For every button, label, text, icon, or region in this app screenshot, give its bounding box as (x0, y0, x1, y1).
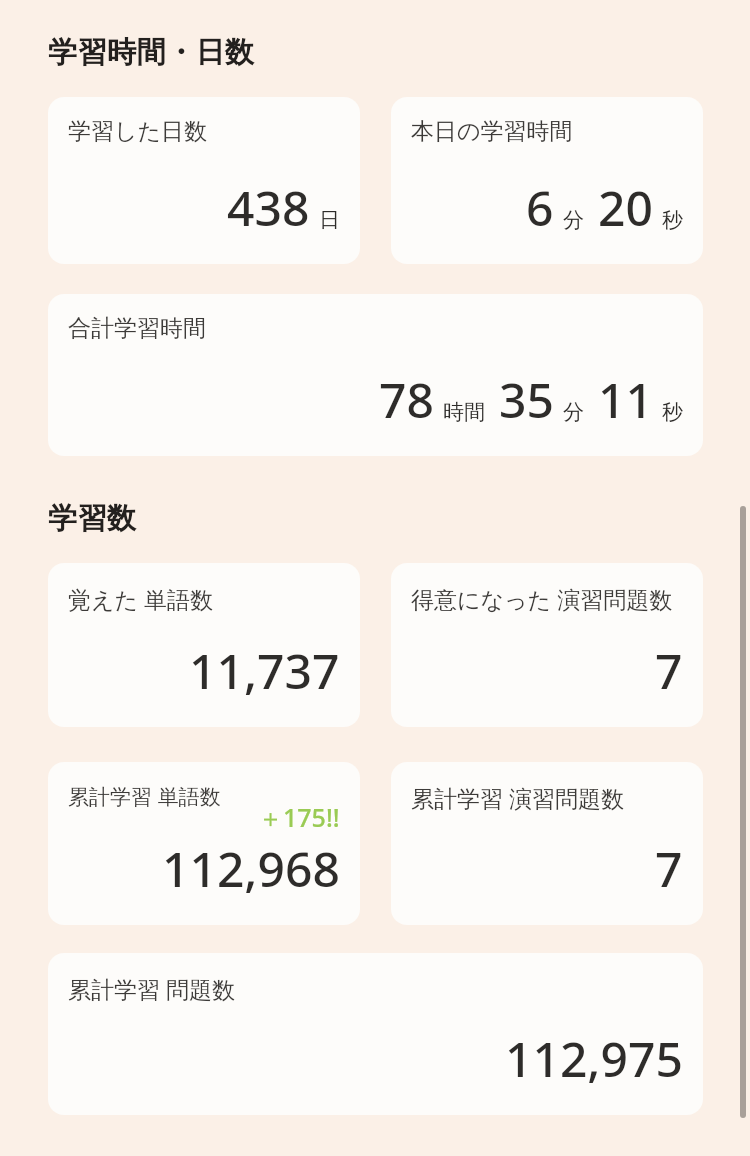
button[interactable]: 覚えた 単語数 (48, 563, 360, 727)
staticText: 合計学習時間 (68, 314, 206, 343)
staticText: 時間 (443, 399, 485, 425)
staticText: 7 (655, 836, 683, 901)
staticText: ＋175!! (258, 800, 340, 834)
staticText: 得意になった 演習問題数 (411, 583, 673, 614)
staticText: 35 (499, 367, 554, 432)
staticText: 6 (526, 175, 554, 240)
staticText: 学習した日数 (68, 117, 208, 146)
button[interactable]: 学習した日数 (48, 97, 360, 264)
button[interactable]: 得意になった 演習問題数 (391, 563, 703, 727)
staticText: 分 (563, 207, 584, 233)
staticText: 秒 (662, 207, 683, 233)
staticText: 累計学習 単語数 (68, 782, 221, 811)
staticText: 11 (598, 367, 653, 432)
staticText: 78 (379, 367, 434, 432)
button[interactable]: 累計学習 単語数 (48, 762, 360, 925)
button[interactable]: 累計学習 演習問題数 (391, 762, 703, 925)
staticText: 7 (655, 638, 683, 703)
staticText: 112,975 (505, 1026, 683, 1091)
staticText: 本日の学習時間 (411, 117, 573, 146)
staticText: 11,737 (189, 638, 340, 703)
staticText: 覚えた 単語数 (68, 583, 214, 614)
staticText: 分 (563, 399, 584, 425)
button[interactable]: 本日の学習時間 (391, 97, 703, 264)
staticText: 秒 (662, 399, 683, 425)
staticText: 学習数 (48, 500, 137, 537)
staticText: 20 (598, 175, 653, 240)
staticText: 学習時間・日数 (48, 34, 255, 71)
staticText: 112,968 (162, 836, 340, 901)
staticText: 累計学習 演習問題数 (411, 782, 624, 813)
button[interactable]: 累計学習 問題数 (48, 953, 703, 1115)
staticText: 438 (227, 175, 310, 240)
button[interactable]: 合計学習時間 (48, 294, 703, 456)
staticText: 日 (319, 207, 340, 233)
staticText: 累計学習 問題数 (68, 973, 235, 1004)
